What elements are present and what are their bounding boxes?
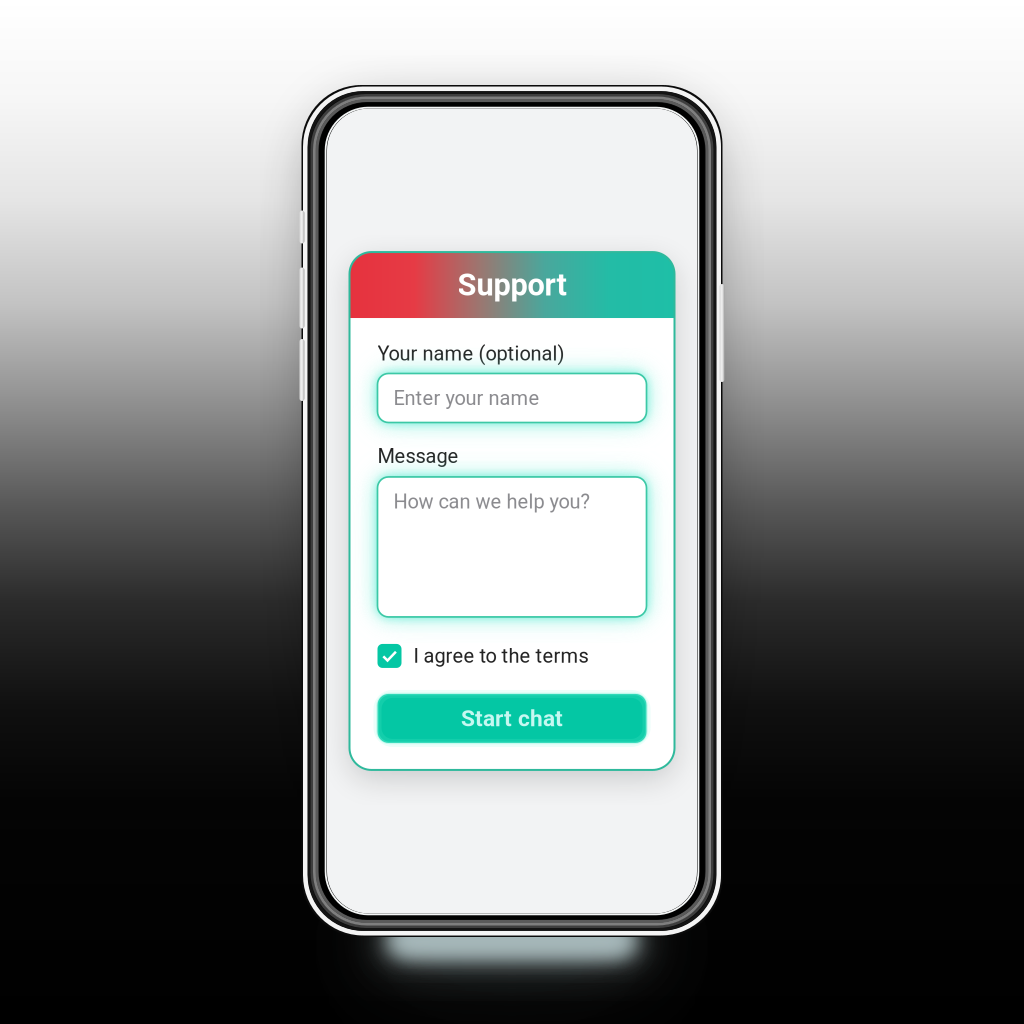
- staticText: Your name (optional): [377, 342, 564, 365]
- button[interactable]: I agree to the terms: [377, 644, 646, 668]
- staticText: Message: [377, 444, 458, 468]
- staticText: Enter your name: [393, 386, 539, 410]
- button[interactable]: Start chat: [377, 694, 646, 743]
- staticText: Support: [457, 267, 566, 303]
- staticText: How can we help you?: [393, 490, 589, 513]
- staticText: I agree to the terms: [413, 644, 588, 668]
- staticText: Start chat: [461, 705, 563, 732]
